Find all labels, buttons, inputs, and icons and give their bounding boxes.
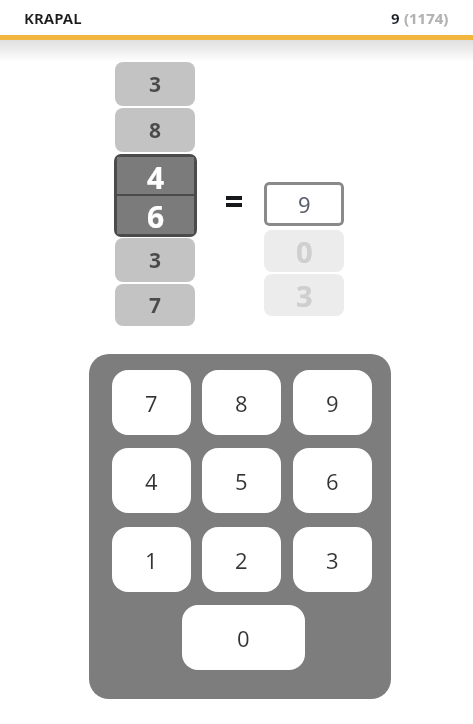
staticText: 4 bbox=[147, 157, 165, 194]
staticText: 8 bbox=[149, 116, 162, 145]
staticText: 0 bbox=[296, 232, 313, 271]
staticText: 4 bbox=[145, 466, 158, 496]
button[interactable]: 9 bbox=[264, 182, 344, 226]
staticText: 9 bbox=[298, 189, 311, 219]
button[interactable]: 7 bbox=[112, 370, 191, 435]
staticText: 7 bbox=[149, 291, 162, 320]
staticText: 3 bbox=[326, 545, 339, 575]
button[interactable]: 3 bbox=[115, 62, 195, 106]
button[interactable]: 5 bbox=[202, 448, 281, 513]
button[interactable]: 7 bbox=[115, 284, 195, 326]
button[interactable]: 1 bbox=[112, 527, 191, 592]
button[interactable]: KRAPAL bbox=[24, 0, 449, 35]
button[interactable]: 0 bbox=[182, 605, 305, 670]
staticText: KRAPAL bbox=[24, 8, 82, 28]
staticText: 9 bbox=[326, 388, 339, 418]
staticText: 6 bbox=[147, 196, 165, 234]
staticText: 1 bbox=[145, 545, 158, 575]
button[interactable]: 8 bbox=[115, 108, 195, 152]
button[interactable]: 3 bbox=[115, 238, 195, 282]
button[interactable]: 4 bbox=[112, 448, 191, 513]
button[interactable]: 8 bbox=[202, 370, 281, 435]
button[interactable]: 9 bbox=[293, 370, 372, 435]
staticText: 9 bbox=[391, 8, 400, 28]
staticText: (1174) bbox=[400, 8, 449, 28]
staticText: 0 bbox=[237, 623, 250, 653]
staticText: 3 bbox=[149, 70, 162, 99]
staticText: 7 bbox=[145, 388, 158, 418]
button[interactable]: 2 bbox=[202, 527, 281, 592]
button[interactable]: 4 bbox=[114, 154, 197, 237]
staticText: 3 bbox=[149, 246, 162, 275]
staticText: 8 bbox=[235, 388, 248, 418]
staticText: 6 bbox=[326, 466, 339, 496]
button[interactable]: 3 bbox=[293, 527, 372, 592]
staticText: 2 bbox=[235, 545, 248, 575]
button[interactable]: 6 bbox=[293, 448, 372, 513]
staticText: 3 bbox=[296, 276, 313, 315]
staticText: 5 bbox=[235, 466, 248, 496]
